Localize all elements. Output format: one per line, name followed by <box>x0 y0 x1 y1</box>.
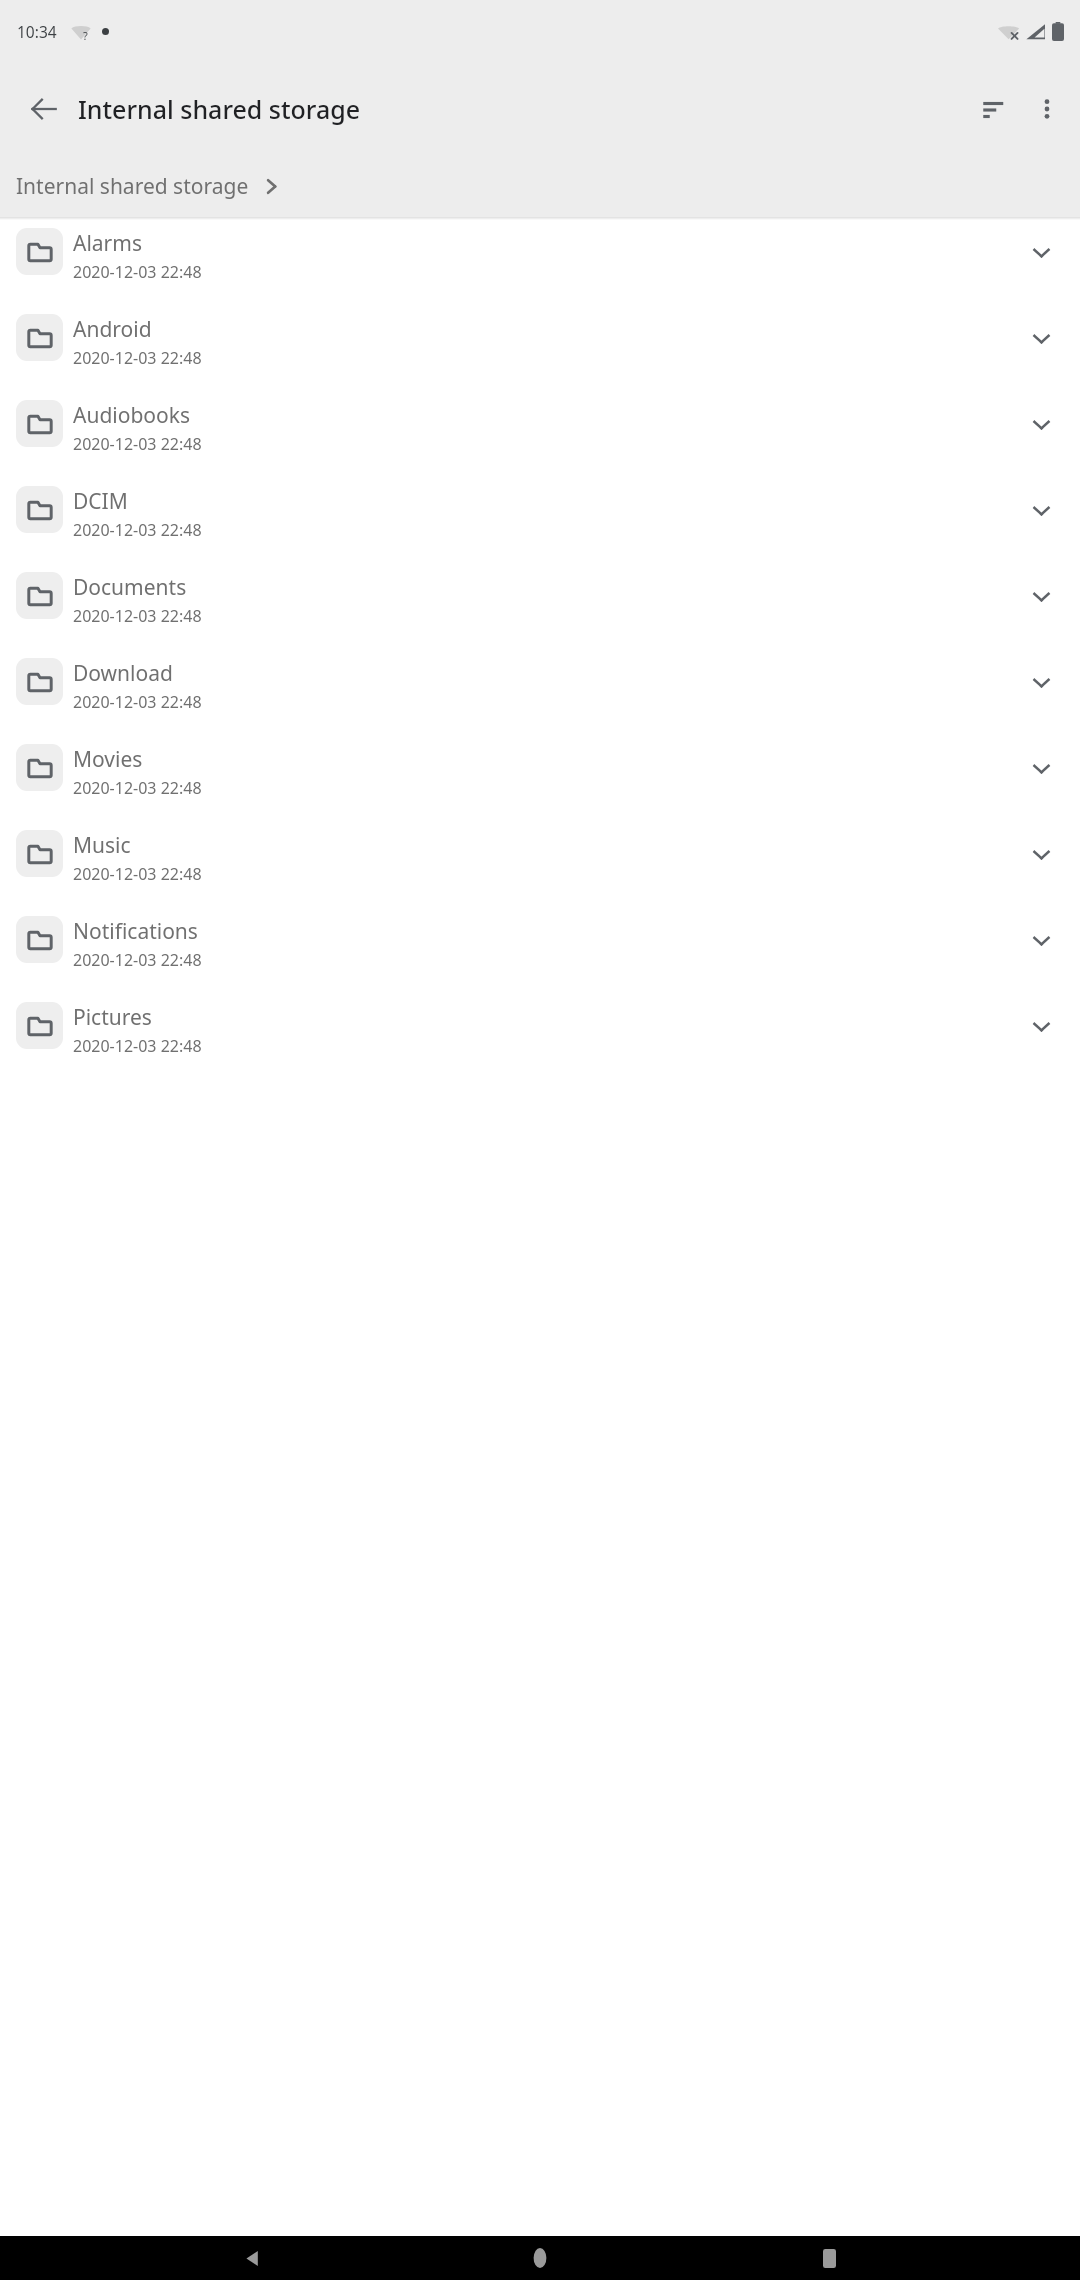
button[interactable]: Documents <box>0 564 1080 650</box>
staticText: Android <box>73 315 152 344</box>
staticText: 2020-12-03 22:48 <box>73 777 202 799</box>
button[interactable]: Expand Notifications <box>1018 917 1064 963</box>
staticText: Audiobooks <box>73 401 191 430</box>
button[interactable]: Expand Download <box>1018 659 1064 705</box>
button[interactable]: More options <box>1019 81 1075 137</box>
button[interactable]: Expand Android <box>1018 315 1064 361</box>
button[interactable]: Recent apps <box>792 2236 866 2280</box>
staticText: 10:34 <box>17 21 57 42</box>
button[interactable]: Expand Alarms <box>1018 229 1064 275</box>
button[interactable]: Download <box>0 650 1080 736</box>
staticText: 2020-12-03 22:48 <box>73 433 202 455</box>
staticText: 2020-12-03 22:48 <box>73 261 202 283</box>
button[interactable]: Sort <box>966 81 1022 137</box>
staticText: 2020-12-03 22:48 <box>73 691 202 713</box>
button[interactable]: Android <box>0 306 1080 392</box>
button[interactable]: Music <box>0 822 1080 908</box>
button[interactable]: Expand DCIM <box>1018 487 1064 533</box>
staticText: ? <box>83 28 88 43</box>
staticText: 2020-12-03 22:48 <box>73 605 202 627</box>
button[interactable]: Expand Pictures <box>1018 1003 1064 1049</box>
staticText: 2020-12-03 22:48 <box>73 1035 202 1057</box>
button[interactable]: Expand Audiobooks <box>1018 401 1064 447</box>
staticText: Notifications <box>73 917 198 946</box>
staticText: 2020-12-03 22:48 <box>73 949 202 971</box>
staticText: Music <box>73 831 131 860</box>
staticText: Documents <box>73 573 187 602</box>
button[interactable]: Alarms <box>0 220 1080 306</box>
staticText: 2020-12-03 22:48 <box>73 519 202 541</box>
staticText: Movies <box>73 745 143 774</box>
button[interactable]: Audiobooks <box>0 392 1080 478</box>
button[interactable]: Expand Documents <box>1018 573 1064 619</box>
button[interactable]: DCIM <box>0 478 1080 564</box>
button[interactable]: Notifications <box>0 908 1080 994</box>
button[interactable]: Home <box>503 2236 577 2280</box>
button[interactable]: Expand Movies <box>1018 745 1064 791</box>
button[interactable]: Pictures <box>0 994 1080 1075</box>
staticText: Download <box>73 659 173 688</box>
staticText: Internal shared storage <box>16 172 249 201</box>
button[interactable]: Back <box>14 79 74 139</box>
staticText: Pictures <box>73 1003 152 1032</box>
staticText: 2020-12-03 22:48 <box>73 347 202 369</box>
button[interactable]: Movies <box>0 736 1080 822</box>
staticText: DCIM <box>73 487 128 516</box>
staticText: 2020-12-03 22:48 <box>73 863 202 885</box>
button[interactable]: Internal shared storage <box>0 155 1080 217</box>
staticText: Alarms <box>73 229 142 258</box>
button[interactable]: Expand Music <box>1018 831 1064 877</box>
button[interactable]: Back <box>215 2236 289 2280</box>
staticText: Internal shared storage <box>78 92 361 126</box>
